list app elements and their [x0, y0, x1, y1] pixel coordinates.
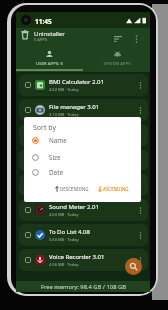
button[interactable]: Options — [133, 203, 147, 217]
staticText: Date — [49, 168, 63, 177]
staticText: Voice Recorder 3.01 — [49, 253, 105, 261]
button[interactable]: Options — [133, 153, 147, 167]
staticText: ASCENDING — [103, 186, 129, 192]
button[interactable]: USER APPS: 5 — [16, 50, 83, 72]
staticText: Compass 2.00 — [49, 153, 89, 161]
staticText: 2.21 MB · Today — [49, 137, 79, 142]
button[interactable]: Date — [32, 165, 138, 179]
button[interactable]: To Do List 4.08 — [19, 224, 148, 246]
staticText: DESCENDING — [60, 186, 89, 192]
button[interactable]: Sort — [110, 31, 126, 47]
button[interactable]: File manager 3.01 — [19, 99, 148, 121]
button[interactable]: Options — [133, 128, 147, 142]
button[interactable]: Name — [32, 133, 138, 147]
staticText: Uninstaller — [34, 30, 65, 38]
button[interactable]: BMI Calculator 2.01 — [19, 74, 148, 96]
button[interactable]: Options — [133, 253, 147, 267]
button[interactable]: More options — [128, 31, 144, 47]
staticText: 5 APPS — [34, 37, 47, 42]
staticText: 4.06 MB · Today — [49, 262, 79, 267]
button[interactable]: Calculator 1.02 — [19, 124, 148, 146]
staticText: 11:45 — [35, 17, 52, 26]
button[interactable]: Options — [133, 228, 147, 242]
button[interactable]: Voice Recorder 3.01 — [19, 249, 148, 271]
staticText: Free memory: 98.4 GB / 108 GB — [41, 283, 126, 291]
button[interactable]: Search — [125, 258, 142, 275]
staticText: Name — [49, 136, 67, 145]
staticText: Sort by — [33, 123, 57, 133]
staticText: SYSTEM APPS — [103, 60, 131, 66]
staticText: 2.40 MB · Today — [49, 187, 79, 192]
button[interactable]: Compass 2.00 — [19, 149, 148, 171]
button[interactable]: Sound Meter 2.01 — [19, 199, 148, 221]
staticText: BMI Calculator 2.01 — [49, 78, 104, 86]
staticText: File manager 3.01 — [49, 103, 100, 111]
button[interactable]: Size — [32, 150, 138, 164]
button[interactable]: Options — [133, 103, 147, 117]
staticText: 4.62 MB · Today — [49, 87, 79, 92]
staticText: To Do List 4.08 — [49, 228, 90, 236]
staticText: Size — [49, 153, 61, 162]
staticText: 4.60 MB · Today — [49, 212, 79, 217]
staticText: 3.60 MB · Today — [49, 237, 79, 242]
button[interactable]: ASCENDING — [98, 184, 129, 194]
button[interactable]: Options — [133, 178, 147, 192]
button[interactable]: SYSTEM APPS — [83, 50, 150, 72]
button[interactable]: Options — [133, 78, 147, 92]
staticText: USER APPS: 5 — [36, 60, 63, 66]
button[interactable]: DESCENDING — [55, 184, 89, 194]
staticText: Calculator 1.02 — [49, 128, 91, 136]
staticText: 3.10 MB · Today — [49, 112, 79, 117]
button[interactable]: Notes 1.11 — [19, 174, 148, 196]
staticText: Sound Meter 2.01 — [49, 203, 99, 211]
